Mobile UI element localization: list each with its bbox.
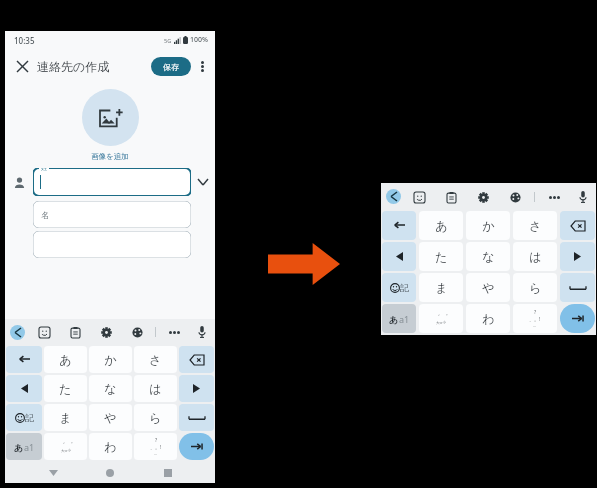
button[interactable]: か (89, 346, 132, 373)
button[interactable] (33, 231, 191, 258)
staticText: た (435, 249, 448, 264)
button[interactable] (6, 346, 42, 373)
button[interactable]: Voice input (194, 324, 210, 340)
button[interactable]: や (466, 273, 510, 302)
staticText: か (482, 218, 495, 233)
button[interactable]: か (466, 211, 510, 240)
button[interactable]: あ (419, 211, 463, 240)
button[interactable]: Back (43, 463, 63, 483)
staticText: か (104, 352, 117, 367)
staticText: 記 (25, 412, 34, 423)
staticText: 保存 (163, 62, 179, 72)
button[interactable] (560, 304, 595, 333)
button[interactable]: 記 (382, 273, 416, 302)
button[interactable]: Settings (475, 189, 491, 205)
button[interactable]: わ (89, 433, 132, 460)
button[interactable]: は (134, 375, 177, 402)
staticText: ? (155, 437, 158, 444)
button[interactable]: More options (193, 57, 211, 75)
staticText: さ (149, 352, 162, 367)
staticText: 10:35 (14, 35, 35, 46)
staticText: ら (149, 410, 162, 425)
button[interactable]: ま (419, 273, 463, 302)
staticText: ? (534, 309, 537, 316)
button[interactable]: な (89, 375, 132, 402)
button[interactable]: Expand (191, 179, 215, 185)
button[interactable]: Back (386, 189, 401, 204)
staticText: 大⇔小 (436, 321, 446, 325)
button[interactable]: Voice input (575, 189, 591, 205)
button[interactable]: ら (513, 273, 557, 302)
staticText: 連絡先の作成 (37, 59, 110, 74)
button[interactable]: More (546, 189, 562, 205)
staticText: あ (14, 442, 24, 453)
button[interactable] (382, 242, 416, 271)
staticText: ゛ ゜ (59, 441, 73, 449)
button[interactable]: 姓 (33, 168, 191, 196)
button[interactable]: な (466, 242, 510, 271)
button[interactable]: Sticker (411, 189, 427, 205)
staticText: や (482, 280, 495, 295)
button[interactable] (560, 211, 595, 240)
button[interactable]: ゛ ゜ (419, 304, 463, 333)
staticText: 5G (164, 37, 172, 44)
staticText: た (59, 381, 72, 396)
button[interactable]: わ (466, 304, 510, 333)
button[interactable]: ら (134, 404, 177, 431)
button[interactable] (179, 375, 214, 402)
button[interactable] (560, 273, 595, 302)
button[interactable]: は (513, 242, 557, 271)
staticText: ま (435, 280, 448, 295)
staticText: な (104, 381, 117, 396)
button[interactable]: Recents (158, 463, 178, 483)
staticText: な (482, 249, 495, 264)
staticText: 100% (190, 35, 208, 45)
button[interactable]: さ (513, 211, 557, 240)
button[interactable]: 名 (33, 201, 191, 228)
staticText: 画像を追加 (91, 152, 129, 161)
staticText: 姓 (41, 168, 47, 172)
button[interactable]: や (89, 404, 132, 431)
button[interactable]: あ (6, 433, 42, 460)
staticText: は (529, 249, 542, 264)
button[interactable]: 保存 (151, 57, 191, 76)
button[interactable] (6, 375, 42, 402)
button[interactable] (179, 433, 214, 460)
staticText: わ (104, 439, 117, 454)
staticText: ゛ ゜ (434, 313, 448, 321)
button[interactable] (179, 346, 214, 373)
staticText: … (154, 451, 158, 456)
button[interactable]: た (419, 242, 463, 271)
staticText: は (149, 381, 162, 396)
staticText: 、。! (150, 444, 162, 451)
button[interactable]: さ (134, 346, 177, 373)
button[interactable]: あ (382, 304, 416, 333)
button[interactable]: Add photo (82, 89, 139, 146)
button[interactable]: 記 (6, 404, 42, 431)
button[interactable]: Theme (129, 324, 145, 340)
button[interactable]: Close (11, 55, 33, 77)
staticText: や (104, 410, 117, 425)
button[interactable]: た (44, 375, 87, 402)
staticText: あ (389, 314, 399, 325)
button[interactable]: Back (10, 325, 25, 340)
staticText: ま (59, 410, 72, 425)
button[interactable]: Clipboard (443, 189, 459, 205)
staticText: わ (482, 311, 495, 326)
button[interactable]: Settings (98, 324, 114, 340)
button[interactable]: ? (513, 304, 557, 333)
button[interactable] (560, 242, 595, 271)
button[interactable] (382, 211, 416, 240)
button[interactable]: Theme (507, 189, 523, 205)
button[interactable]: あ (44, 346, 87, 373)
button[interactable]: Home (100, 463, 120, 483)
button[interactable] (179, 404, 214, 431)
button[interactable]: ゛ ゜ (44, 433, 87, 460)
staticText: … (533, 323, 537, 328)
button[interactable]: ま (44, 404, 87, 431)
staticText: a1 (24, 441, 35, 453)
button[interactable]: Clipboard (67, 324, 83, 340)
button[interactable]: ? (134, 433, 177, 460)
button[interactable]: Sticker (36, 324, 52, 340)
button[interactable]: More (166, 324, 182, 340)
